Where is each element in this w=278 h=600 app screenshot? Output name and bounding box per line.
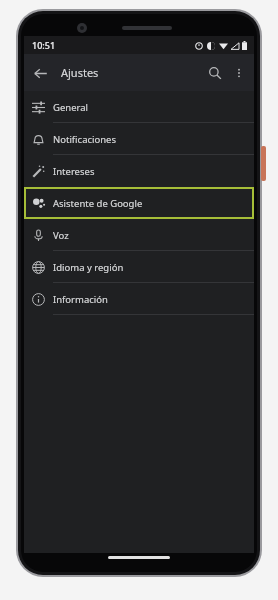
staticText: Intereses	[53, 165, 95, 178]
button[interactable]: Asistente de Google	[24, 187, 254, 219]
button[interactable]: Idioma y región	[24, 251, 254, 283]
staticText: Voz	[53, 229, 69, 242]
staticText: 10:51	[32, 39, 56, 51]
staticText: Asistente de Google	[53, 197, 143, 210]
button[interactable]: Intereses	[24, 155, 254, 187]
staticText: General	[53, 101, 89, 114]
button[interactable]: Información	[24, 283, 254, 315]
button[interactable]: Notificaciones	[24, 123, 254, 155]
button[interactable]: General	[24, 91, 254, 123]
staticText: Notificaciones	[53, 133, 116, 146]
staticText: Idioma y región	[53, 261, 124, 274]
button[interactable]: Voz	[24, 219, 254, 251]
button[interactable]: Atrás	[27, 60, 53, 86]
button[interactable]: Más opciones	[228, 62, 250, 84]
staticText: Ajustes	[61, 65, 99, 80]
button[interactable]: Buscar	[202, 60, 228, 86]
staticText: Información	[53, 293, 108, 306]
